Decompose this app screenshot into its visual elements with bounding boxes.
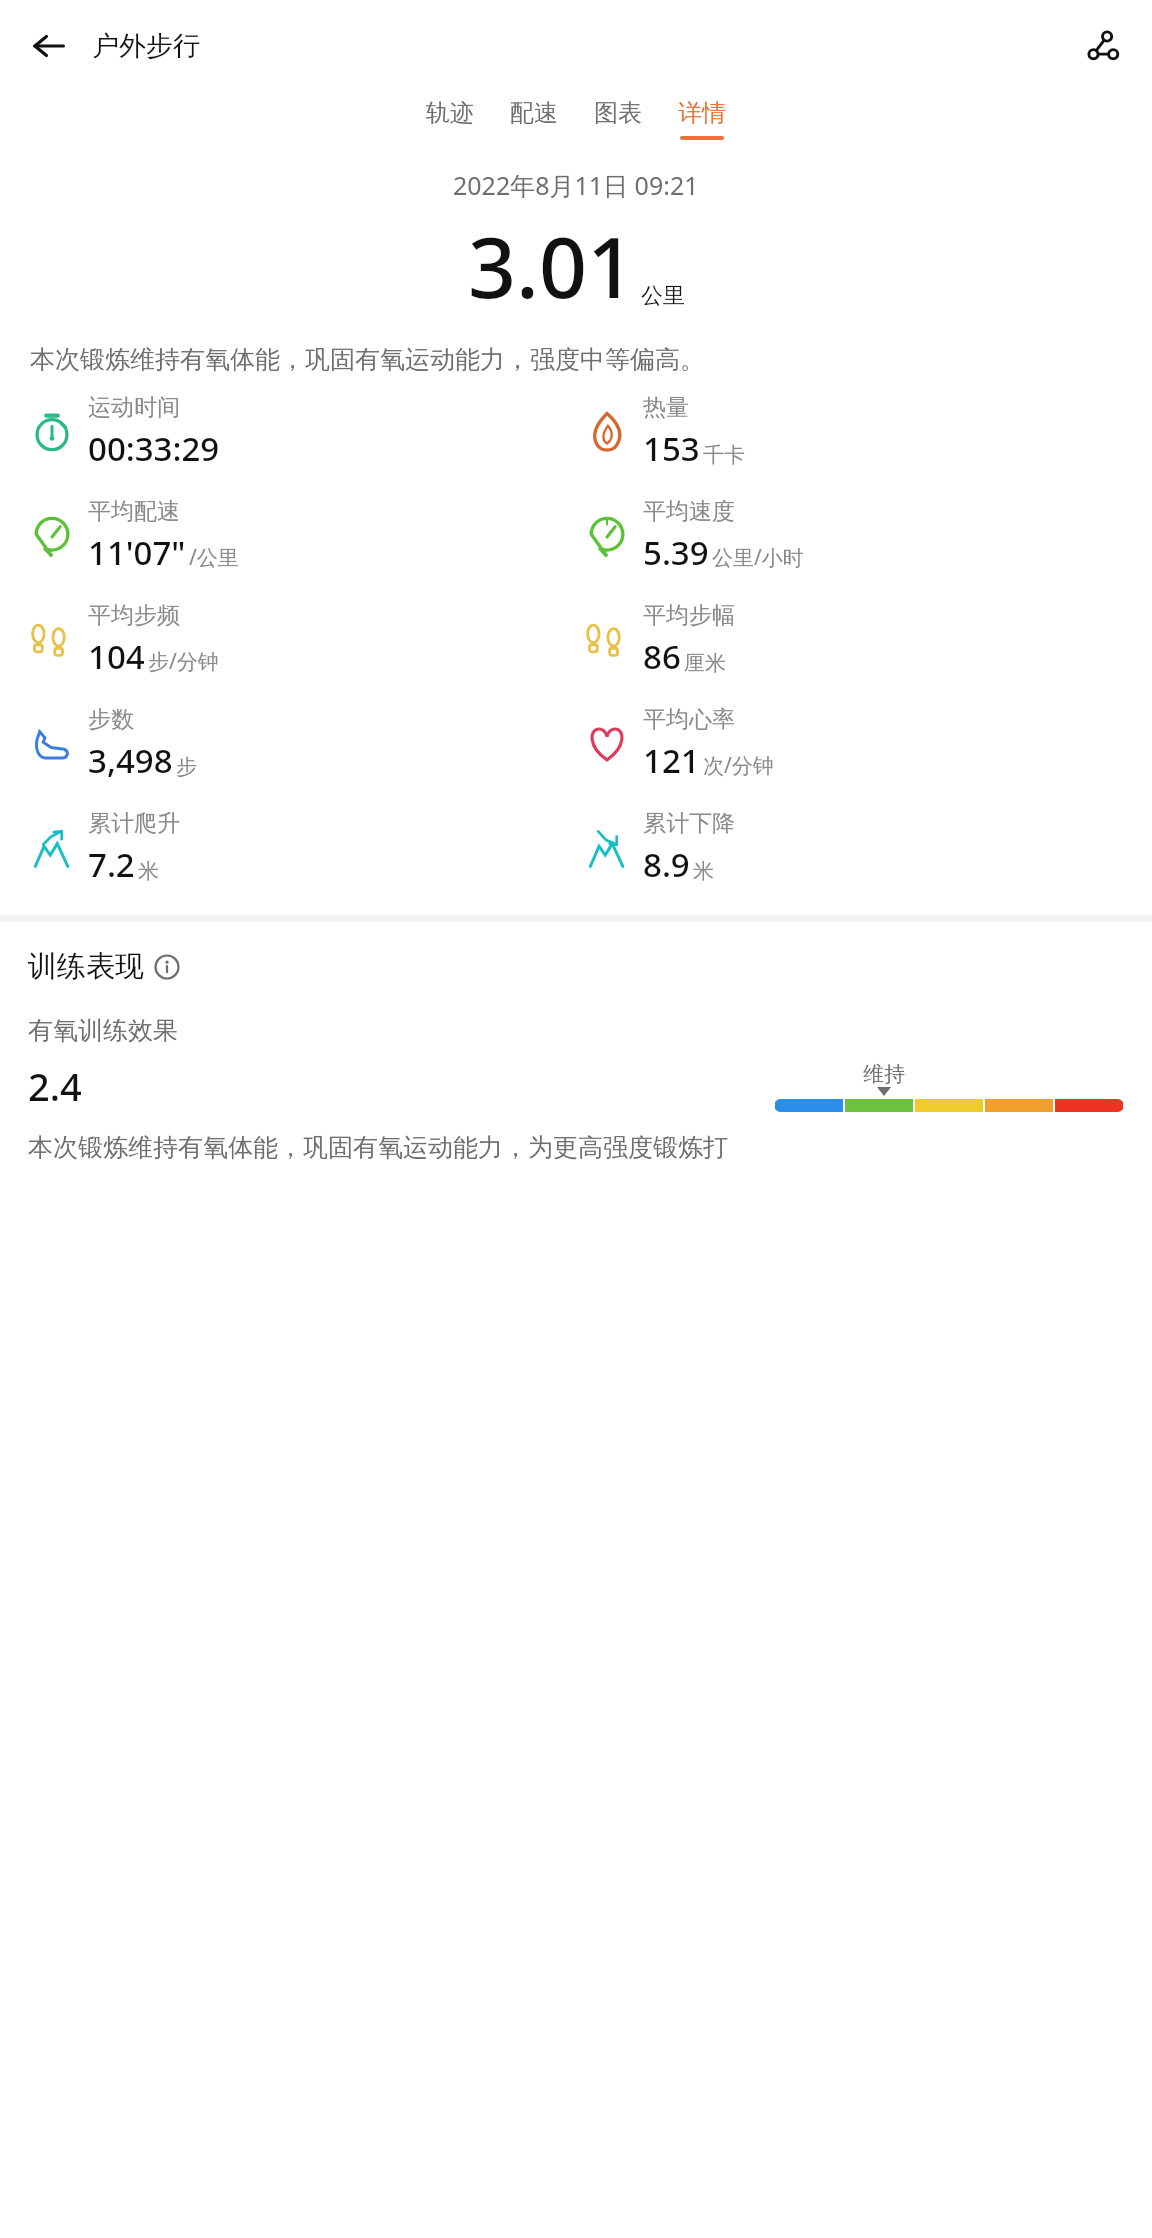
staticText: 11'07" xyxy=(88,530,186,575)
staticText: 2022年8月11日 09:21 xyxy=(453,168,699,202)
staticText: 2.4 xyxy=(28,1060,82,1112)
staticText: 平均心率 xyxy=(643,705,735,734)
staticText: 00:33:29 xyxy=(88,426,220,471)
staticText: 步数 xyxy=(88,705,134,734)
staticText: 3.01 xyxy=(468,208,635,322)
staticText: 121 xyxy=(643,738,700,783)
staticText: 153 xyxy=(643,426,700,471)
staticText: 次/分钟 xyxy=(703,751,774,780)
staticText: 米 xyxy=(693,858,714,884)
staticText: 户外步行 xyxy=(92,29,200,63)
button[interactable]: 平均配速 xyxy=(26,497,581,575)
staticText: 平均配速 xyxy=(88,497,180,526)
button[interactable]: 累计下降 xyxy=(581,809,1136,887)
staticText: 平均步频 xyxy=(88,601,180,630)
button[interactable]: Back xyxy=(20,17,78,75)
button[interactable]: 平均速度 xyxy=(581,497,1136,575)
staticText: 86 xyxy=(643,634,681,679)
staticText: 5.39 xyxy=(643,530,709,575)
staticText: 配速 xyxy=(510,98,558,128)
staticText: 3,498 xyxy=(88,738,173,783)
staticText: 图表 xyxy=(594,98,642,128)
staticText: 本次锻炼维持有氧体能，巩固有氧运动能力，为更高强度锻炼打 xyxy=(28,1132,728,1163)
staticText: 维持 xyxy=(863,1061,905,1087)
staticText: 公里 xyxy=(641,282,685,310)
staticText: 米 xyxy=(138,858,159,884)
staticText: 公里/小时 xyxy=(712,543,804,572)
staticText: 7.2 xyxy=(88,842,135,887)
button[interactable]: 步数 xyxy=(26,705,581,783)
button[interactable]: 图表 xyxy=(576,92,660,146)
staticText: 训练表现 xyxy=(28,948,144,985)
staticText: 热量 xyxy=(643,393,689,422)
staticText: 详情 xyxy=(678,98,726,128)
button[interactable]: 轨迹 xyxy=(408,92,492,146)
staticText: 有氧训练效果 xyxy=(28,1015,178,1046)
staticText: 轨迹 xyxy=(426,98,474,128)
button[interactable]: Share xyxy=(1074,17,1132,75)
staticText: 平均步幅 xyxy=(643,601,735,630)
button[interactable]: 平均步频 xyxy=(26,601,581,679)
staticText: 千卡 xyxy=(703,442,745,468)
staticText: 步/分钟 xyxy=(148,647,219,676)
button[interactable]: 累计爬升 xyxy=(26,809,581,887)
staticText: 本次锻炼维持有氧体能，巩固有氧运动能力，强度中等偏高。 xyxy=(30,344,1122,375)
button[interactable]: 配速 xyxy=(492,92,576,146)
staticText: 8.9 xyxy=(643,842,690,887)
button[interactable]: 平均步幅 xyxy=(581,601,1136,679)
button[interactable]: 热量 xyxy=(581,393,1136,471)
button[interactable]: 详情 xyxy=(660,92,744,146)
staticText: 累计爬升 xyxy=(88,809,180,838)
staticText: 步 xyxy=(176,754,197,780)
button[interactable]: 平均心率 xyxy=(581,705,1136,783)
button[interactable]: 运动时间 xyxy=(26,393,581,471)
button[interactable]: 训练表现 xyxy=(28,948,180,985)
staticText: 运动时间 xyxy=(88,393,180,422)
staticText: 104 xyxy=(88,634,145,679)
staticText: 累计下降 xyxy=(643,809,735,838)
other: Info xyxy=(154,954,180,980)
staticText: 平均速度 xyxy=(643,497,735,526)
staticText: /公里 xyxy=(189,543,239,572)
staticText: 厘米 xyxy=(684,650,726,676)
